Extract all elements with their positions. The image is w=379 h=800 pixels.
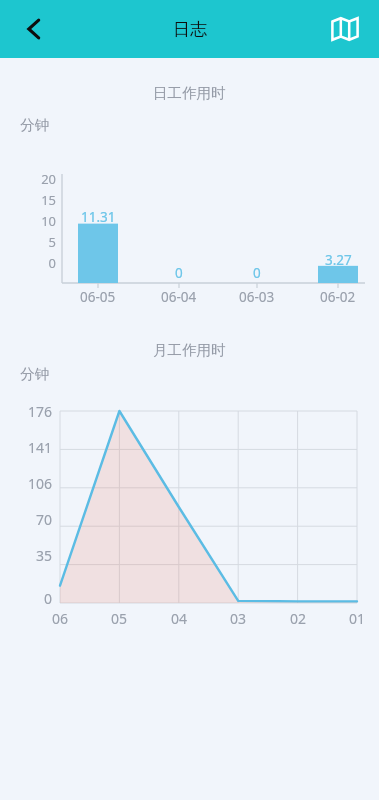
staticText: 11.31 — [81, 208, 116, 226]
staticText: 5 — [34, 233, 56, 251]
staticText: 05 — [111, 609, 128, 628]
staticText: 分钟 — [20, 116, 49, 134]
staticText: 35 — [14, 546, 52, 565]
staticText: 日志 — [173, 19, 207, 40]
staticText: 176 — [14, 402, 52, 421]
staticText: 分钟 — [20, 365, 49, 383]
staticText: 0 — [14, 589, 52, 608]
button[interactable]: Map — [319, 3, 371, 55]
staticText: 04 — [171, 609, 188, 628]
staticText: 15 — [34, 191, 56, 209]
staticText: 日工作用时 — [153, 84, 226, 102]
staticText: 02 — [290, 609, 307, 628]
staticText: 0 — [34, 254, 56, 272]
staticText: 70 — [14, 510, 52, 529]
staticText: 01 — [349, 609, 366, 628]
staticText: 106 — [14, 474, 52, 493]
staticText: 0 — [253, 264, 261, 282]
staticText: 06-02 — [320, 288, 356, 306]
staticText: 3.27 — [325, 251, 352, 269]
staticText: 141 — [14, 438, 52, 457]
staticText: 20 — [34, 170, 56, 188]
staticText: 06-04 — [161, 288, 197, 306]
staticText: 月工作用时 — [153, 341, 226, 359]
staticText: 06-03 — [239, 288, 275, 306]
staticText: 10 — [34, 212, 56, 230]
button[interactable]: Back — [8, 3, 60, 55]
staticText: 0 — [175, 264, 183, 282]
staticText: 06-05 — [80, 288, 116, 306]
staticText: 06 — [52, 609, 69, 628]
staticText: 03 — [230, 609, 247, 628]
